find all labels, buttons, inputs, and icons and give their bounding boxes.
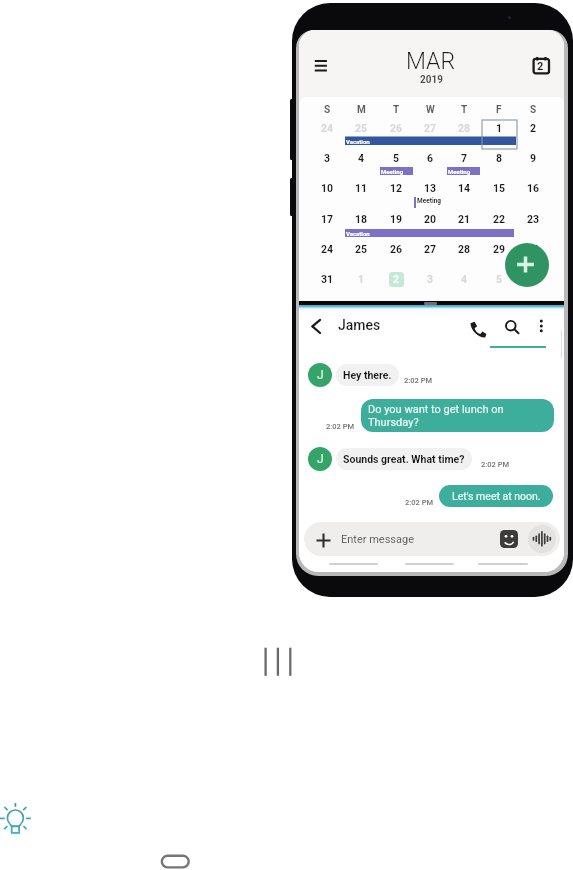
button[interactable]: Sounds great. What time? [336, 448, 472, 470]
button[interactable]: 26 [382, 119, 410, 137]
button[interactable]: 12 [382, 179, 410, 197]
button[interactable]: 27 [416, 240, 444, 258]
button[interactable]: Back [306, 316, 324, 337]
button[interactable]: 1 [347, 270, 375, 288]
button[interactable]: 21 [450, 210, 478, 228]
button[interactable]: Vacation [345, 229, 514, 237]
staticText: F [496, 104, 502, 116]
button[interactable]: 3 [416, 270, 444, 288]
staticText: 27 [424, 243, 437, 255]
button[interactable]: 28 [450, 240, 478, 258]
button[interactable]: Meeting [447, 167, 480, 175]
staticText: 13 [424, 182, 437, 194]
button[interactable]: 18 [347, 210, 375, 228]
button[interactable]: 2 [519, 119, 547, 137]
staticText: 20 [424, 213, 437, 225]
button[interactable]: 22 [485, 210, 513, 228]
staticText: Let's meet at noon. [452, 490, 541, 502]
button[interactable]: Voice message [528, 525, 556, 553]
button[interactable]: 9 [519, 149, 547, 167]
staticText: 31 [321, 273, 334, 285]
button[interactable]: 6 [519, 270, 547, 288]
staticText: 25 [355, 243, 368, 255]
button[interactable]: 6 [416, 149, 444, 167]
staticText: Vacation [346, 230, 370, 237]
button[interactable]: Hey there. [336, 364, 399, 386]
staticText: 4 [358, 152, 365, 164]
button[interactable]: 2 [382, 270, 410, 288]
button[interactable]: 17 [313, 210, 341, 228]
staticText: 22 [493, 213, 506, 225]
button[interactable]: 29 [485, 240, 513, 258]
staticText: 2019 [420, 74, 443, 86]
staticText: 30 [527, 243, 540, 255]
staticText: Enter message [341, 533, 415, 546]
staticText: 12 [390, 182, 403, 194]
button[interactable]: Meeting [380, 167, 413, 175]
button[interactable]: Let's meet at noon. [439, 485, 553, 507]
staticText: J [317, 368, 324, 382]
button[interactable]: 5 [485, 270, 513, 288]
button[interactable]: Meeting [417, 197, 441, 208]
button[interactable]: 28 [450, 119, 478, 137]
button[interactable]: 7 [450, 149, 478, 167]
button[interactable]: 24 [313, 119, 341, 137]
button[interactable]: Search [504, 319, 520, 335]
button[interactable]: Jump to today [528, 52, 554, 78]
staticText: 15 [493, 182, 506, 194]
staticText: 24 [321, 243, 334, 255]
button[interactable]: Menu [309, 54, 333, 78]
button[interactable]: 5 [382, 149, 410, 167]
button[interactable]: 31 [313, 270, 341, 288]
button[interactable]: Add attachment [316, 533, 331, 548]
button[interactable]: 15 [485, 179, 513, 197]
staticText: 2 [537, 60, 544, 73]
button[interactable]: 4 [347, 149, 375, 167]
staticText: 27 [424, 122, 437, 134]
button[interactable]: More options [536, 317, 547, 334]
button[interactable] [304, 522, 560, 556]
button[interactable]: 14 [450, 179, 478, 197]
staticText: Meeting [381, 168, 404, 175]
staticText: 10 [321, 182, 334, 194]
button[interactable]: 10 [313, 179, 341, 197]
button[interactable]: 23 [519, 210, 547, 228]
button[interactable]: 19 [382, 210, 410, 228]
button[interactable]: 8 [485, 149, 513, 167]
staticText: T [461, 104, 468, 116]
button[interactable]: 1 [485, 119, 513, 137]
button[interactable]: Stickers [500, 530, 518, 548]
button[interactable]: Recent apps [260, 644, 296, 680]
staticText: 14 [458, 182, 471, 194]
button[interactable]: 27 [416, 119, 444, 137]
staticText: Sounds great. What time? [343, 453, 465, 465]
button[interactable]: Add event [505, 243, 549, 287]
button[interactable]: James [338, 314, 381, 336]
button[interactable]: Vacation [345, 137, 516, 145]
button[interactable]: 26 [382, 240, 410, 258]
button[interactable]: J [308, 447, 332, 471]
button[interactable]: 20 [416, 210, 444, 228]
button[interactable]: 3 [313, 149, 341, 167]
staticText: 8 [496, 152, 503, 164]
button[interactable]: 30 [519, 240, 547, 258]
button[interactable]: 11 [347, 179, 375, 197]
button[interactable]: 13 [416, 179, 444, 197]
staticText: M [357, 104, 366, 116]
button[interactable]: 4 [450, 270, 478, 288]
staticText: 28 [458, 243, 471, 255]
button[interactable]: 25 [347, 240, 375, 258]
staticText: 6 [530, 273, 537, 285]
button[interactable]: Do you want to get lunch on Thursday? [361, 399, 554, 432]
button[interactable]: Call [469, 320, 483, 334]
staticText: W [426, 104, 435, 116]
button[interactable]: J [308, 363, 332, 387]
staticText: Meeting [448, 168, 471, 175]
button[interactable]: 25 [347, 119, 375, 137]
staticText: 2:02 PM [404, 376, 432, 385]
staticText: MAR [406, 48, 456, 75]
staticText: 2 [393, 273, 400, 285]
button[interactable]: 24 [313, 240, 341, 258]
staticText: S [324, 104, 331, 116]
button[interactable]: 16 [519, 179, 547, 197]
